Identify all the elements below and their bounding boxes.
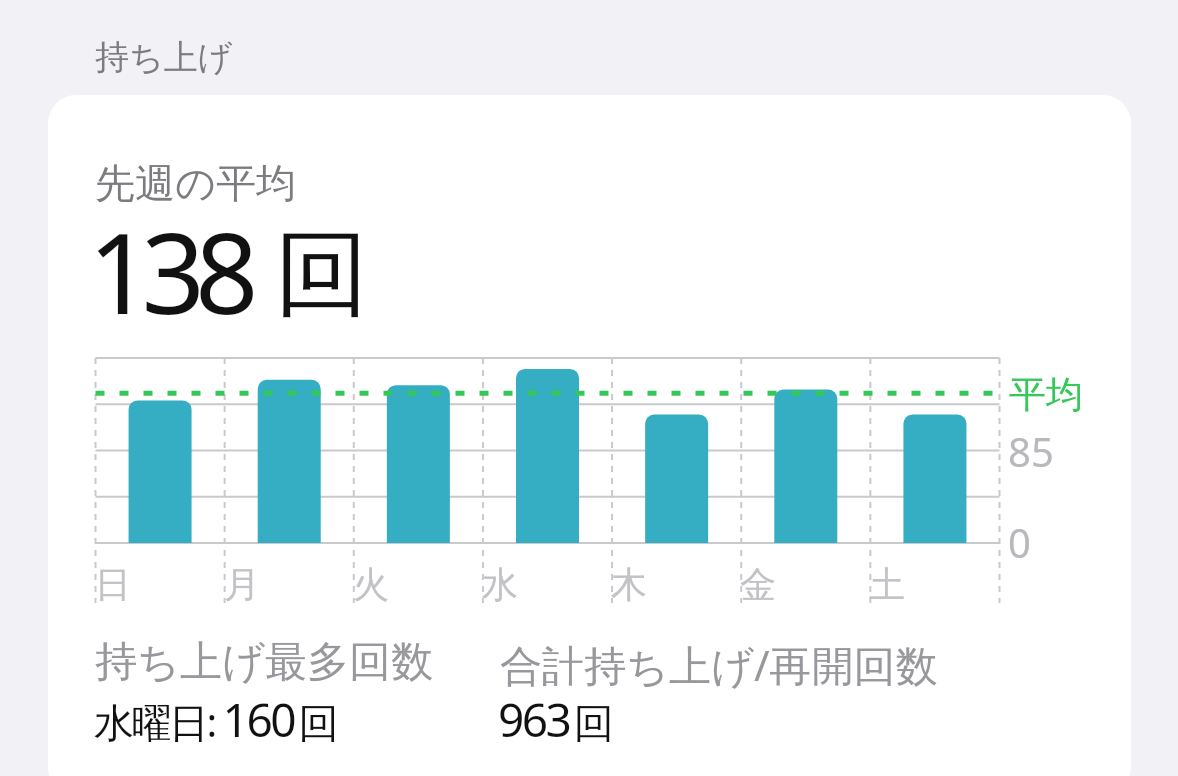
staticText: 木 xyxy=(611,562,647,607)
staticText: 963 回 xyxy=(498,688,612,751)
staticText: 水 xyxy=(482,562,518,607)
staticText: 回 xyxy=(275,215,369,333)
staticText: 金 xyxy=(740,562,776,607)
staticText: 先週の平均 xyxy=(95,158,296,208)
staticText: 平均 xyxy=(1009,371,1083,418)
staticText: 火 xyxy=(353,562,389,607)
staticText: 持ち上げ最多回数 xyxy=(95,636,433,689)
staticText: 138 xyxy=(88,195,249,346)
staticText: 合計持ち上げ/再開回数 xyxy=(500,636,938,693)
staticText: 土 xyxy=(869,562,905,607)
staticText: 85 xyxy=(1008,424,1054,478)
staticText: 水曜日: 160 回 xyxy=(94,688,336,751)
staticText: 持ち上げ xyxy=(95,36,233,79)
staticText: 0 xyxy=(1008,515,1031,569)
staticText: 月 xyxy=(224,562,260,607)
staticText: 日 xyxy=(95,562,131,607)
